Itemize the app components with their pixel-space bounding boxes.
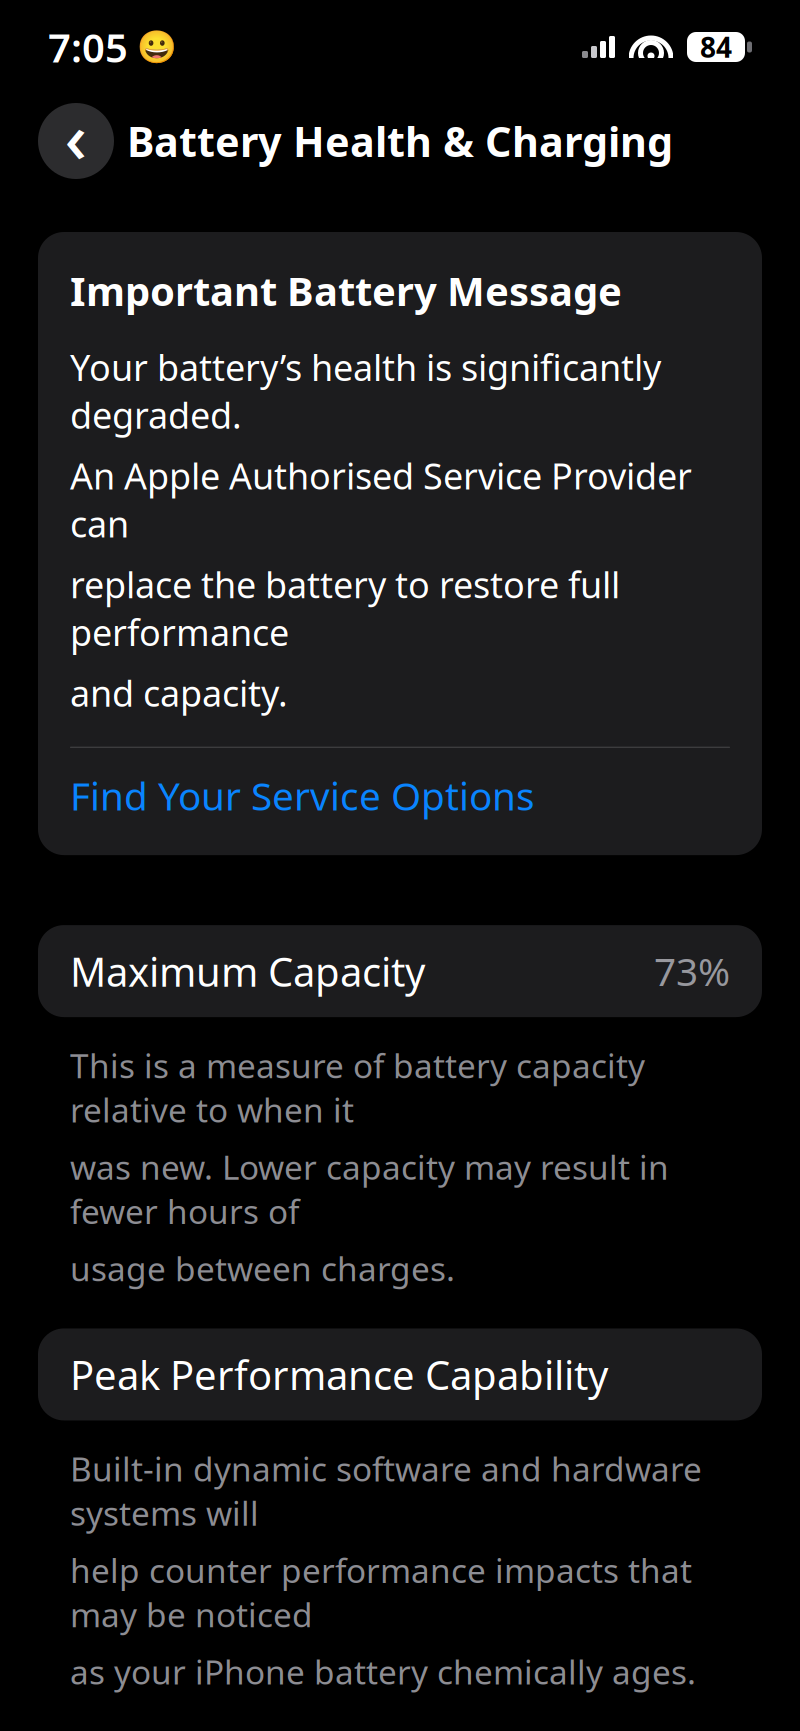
staticText: ‹ (64, 90, 87, 182)
staticText: Battery Health & Charging (127, 114, 673, 168)
staticText: Peak Performance Capability (70, 1348, 608, 1401)
staticText: help counter performance impacts that ma… (70, 1548, 692, 1636)
staticText: 73% (654, 945, 730, 997)
staticText: Maximum Capacity (70, 945, 425, 998)
staticText: Important Battery Message (70, 264, 622, 317)
staticText: and capacity. (70, 669, 288, 717)
staticText: Built-in dynamic software and hardware s… (70, 1446, 702, 1535)
staticText: 😀 (137, 29, 177, 65)
staticText: usage between charges. (70, 1246, 455, 1290)
button[interactable]: Find Your Service Options (70, 748, 730, 843)
staticText: 84 (700, 28, 732, 66)
button[interactable]: Back (38, 95, 114, 187)
button[interactable]: Peak Performance Capability (38, 1328, 762, 1420)
staticText: This is a measure of battery capacity re… (70, 1043, 645, 1132)
staticText: Your battery’s health is significantly d… (70, 343, 661, 439)
staticText: An Apple Authorised Service Provider can (70, 452, 692, 547)
staticText: was new. Lower capacity may result in fe… (70, 1145, 669, 1233)
staticText: as your iPhone battery chemically ages. (70, 1649, 696, 1694)
staticText: replace the battery to restore full perf… (70, 560, 620, 656)
staticText: Find Your Service Options (70, 770, 535, 821)
button[interactable]: Maximum Capacity (38, 925, 762, 1017)
staticText: 7:05 (48, 20, 128, 73)
